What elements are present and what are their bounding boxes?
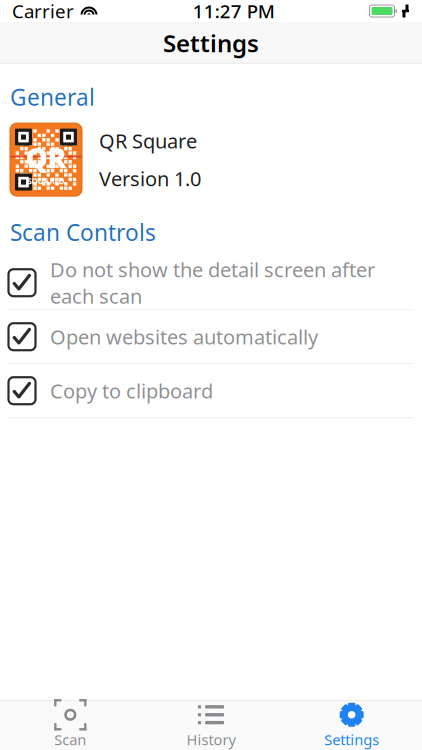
staticText: 11:27 PM bbox=[193, 0, 275, 23]
button[interactable]: Open websites automatically bbox=[0, 310, 422, 364]
button[interactable]: Copy to clipboard bbox=[0, 364, 422, 418]
button[interactable]: Do not show the detail screen after each… bbox=[0, 256, 422, 310]
staticText: QR Square bbox=[99, 127, 197, 154]
staticText: Scan bbox=[54, 730, 86, 749]
staticText: Scan Controls bbox=[10, 217, 156, 247]
button[interactable]: Settings bbox=[281, 701, 422, 750]
staticText: QR bbox=[25, 139, 66, 176]
staticText: Copy to clipboard bbox=[50, 377, 213, 404]
staticText: Do not show the detail screen after each… bbox=[50, 256, 375, 309]
staticText: SQUARED bbox=[27, 176, 64, 186]
staticText: General bbox=[10, 82, 95, 112]
button[interactable]: Scan bbox=[0, 701, 141, 750]
staticText: Open websites automatically bbox=[50, 323, 318, 350]
staticText: Settings bbox=[324, 730, 379, 749]
staticText: Version 1.0 bbox=[99, 165, 201, 192]
staticText: Settings bbox=[163, 27, 259, 59]
staticText: History bbox=[186, 730, 235, 749]
staticText: Carrier bbox=[12, 0, 74, 23]
button[interactable]: History bbox=[141, 701, 281, 750]
